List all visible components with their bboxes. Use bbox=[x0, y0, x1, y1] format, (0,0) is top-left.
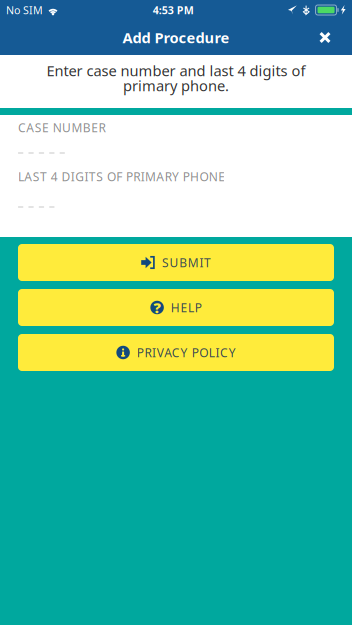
staticText: Enter case number and last 4 digits of bbox=[46, 61, 305, 80]
staticText: PRIVACY POLICY bbox=[137, 344, 236, 360]
staticText: No SIM bbox=[6, 3, 43, 17]
staticText: Add Procedure bbox=[122, 27, 229, 47]
staticText: HELP bbox=[171, 299, 202, 315]
staticText: primary phone. bbox=[123, 76, 229, 95]
staticText: SUBMIT bbox=[162, 254, 211, 270]
staticText: LAST 4 DIGITS OF PRIMARY PHONE bbox=[18, 168, 225, 184]
button[interactable]: SUBMIT bbox=[18, 244, 334, 281]
button[interactable]: Close bbox=[303, 20, 347, 55]
staticText: 4:53 PM bbox=[153, 3, 194, 17]
button[interactable]: PRIVACY POLICY bbox=[18, 334, 334, 371]
staticText: ? bbox=[154, 297, 161, 317]
button[interactable]: ? bbox=[18, 289, 334, 326]
staticText: CASE NUMBER bbox=[18, 119, 105, 135]
